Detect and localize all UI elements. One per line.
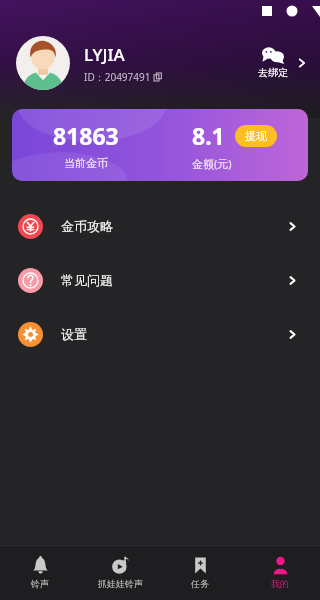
staticText: 去绑定 bbox=[258, 66, 288, 79]
staticText: 当前金币 bbox=[64, 156, 108, 170]
staticText: 设置 bbox=[61, 326, 287, 342]
button[interactable]: 提现 bbox=[235, 125, 277, 147]
staticText: LYJIA bbox=[84, 43, 125, 66]
staticText: 金额(元) bbox=[192, 156, 232, 171]
staticText: 我的 bbox=[271, 578, 289, 589]
staticText: 任务 bbox=[191, 578, 209, 589]
staticText: 81863 bbox=[53, 120, 119, 151]
staticText: 铃声 bbox=[31, 578, 49, 589]
button[interactable]: 81863 bbox=[12, 109, 308, 181]
staticText: 金币攻略 bbox=[61, 218, 287, 234]
button[interactable]: 设置 bbox=[0, 307, 320, 361]
button[interactable]: 抓娃娃铃声 bbox=[80, 545, 160, 600]
staticText: ID：20497491 bbox=[84, 70, 151, 84]
staticText: 8.1 bbox=[192, 120, 225, 151]
staticText: 提现 bbox=[245, 129, 267, 143]
staticText: 抓娃娃铃声 bbox=[98, 578, 143, 589]
button[interactable]: 金币攻略 bbox=[0, 199, 320, 253]
button[interactable]: 去绑定微信 bbox=[254, 43, 292, 83]
button[interactable]: 我的 bbox=[240, 545, 320, 600]
button[interactable]: 铃声 bbox=[0, 545, 80, 600]
staticText: 常见问题 bbox=[61, 272, 287, 288]
button[interactable]: 任务 bbox=[160, 545, 240, 600]
button[interactable]: 常见问题 bbox=[0, 253, 320, 307]
